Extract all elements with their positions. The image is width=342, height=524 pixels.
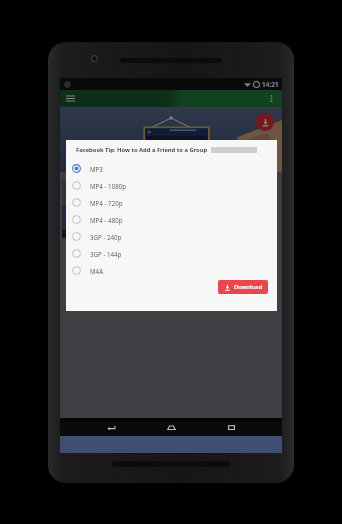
staticText: MP4 - 720p	[90, 199, 123, 207]
button[interactable]: 3GP - 144p	[66, 245, 277, 262]
staticText: MP3	[90, 165, 103, 173]
button[interactable]: Download	[256, 113, 274, 131]
button[interactable]: MP4 - 720p	[66, 194, 277, 211]
staticText: MP4 - 480p	[90, 216, 123, 224]
button[interactable]: MP4 - 480p	[66, 211, 277, 228]
staticText: Facebook Tip: How to Add a Friend to a G…	[76, 146, 208, 154]
button[interactable]: Open navigation menu	[64, 92, 77, 105]
staticText: 3GP - 240p	[90, 233, 122, 241]
button[interactable]: Recent apps	[222, 418, 240, 436]
staticText: M4A	[90, 267, 104, 275]
button[interactable]: Back	[102, 418, 120, 436]
staticText: Download	[234, 283, 262, 291]
button[interactable]: More options	[265, 92, 278, 105]
staticText: 3GP - 144p	[90, 250, 122, 258]
button[interactable]: Download	[218, 280, 268, 294]
button[interactable]: Home	[162, 418, 180, 436]
staticText: 14:21	[262, 80, 279, 89]
button[interactable]: M4A	[66, 262, 277, 279]
button[interactable]: 3GP - 240p	[66, 228, 277, 245]
staticText: MP4 - 1080p	[90, 182, 127, 190]
button[interactable]: MP4 - 1080p	[66, 177, 277, 194]
button[interactable]: MP3	[66, 160, 277, 177]
